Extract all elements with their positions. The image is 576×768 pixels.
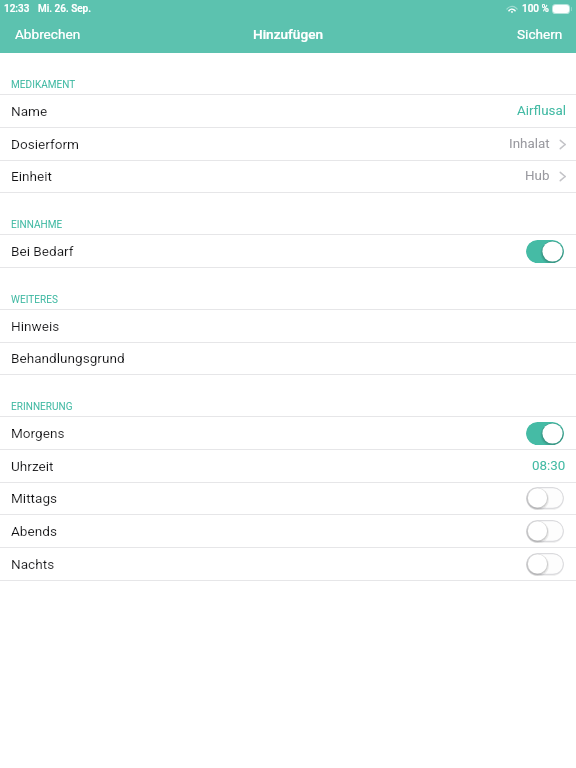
staticText: Nachts [11,556,55,572]
staticText: Mittags [11,490,58,506]
button[interactable]: Bei Bedarf [0,235,576,268]
button[interactable]: Abbrechen [0,18,96,50]
button[interactable]: Bei Bedarf ein [526,240,564,263]
button[interactable]: Nachts aus [526,553,564,576]
staticText: Einheit [11,168,52,184]
staticText: Hinzufügen [253,26,323,42]
staticText: Hinweis [11,318,60,334]
staticText: Uhrzeit [11,458,54,474]
button[interactable]: Behandlungsgrund [0,342,576,375]
staticText: Mi. 26. Sep. [38,3,91,15]
button[interactable]: Sichern [502,18,576,50]
other: Akku [552,4,572,14]
staticText: EINNAHME [11,219,63,231]
staticText: Dosierform [11,136,79,152]
button[interactable]: Morgens ein [526,422,564,445]
other: WLAN [507,5,517,13]
staticText: ERINNERUNG [11,401,73,413]
button[interactable]: Nachts [0,548,576,581]
staticText: 12:33 [4,3,30,15]
staticText: MEDIKAMENT [11,79,76,91]
button[interactable]: Dosierform [0,128,576,161]
staticText: 100 % [522,3,549,15]
button[interactable]: Name [0,95,576,128]
staticText: Airflusal [517,103,566,119]
button[interactable]: Morgens [0,417,576,450]
staticText: Abends [11,523,57,539]
staticText: Morgens [11,425,65,441]
button[interactable]: Einheit [0,160,576,193]
staticText: Behandlungsgrund [11,350,125,366]
staticText: Bei Bedarf [11,243,74,259]
button[interactable]: Uhrzeit [0,450,576,483]
button[interactable]: Mittags aus [526,487,564,510]
staticText: WEITERES [11,294,58,306]
button[interactable]: Abends [0,515,576,548]
button[interactable]: Abends aus [526,520,564,543]
staticText: Name [11,103,48,119]
button[interactable]: Mittags [0,482,576,515]
staticText: Inhalat [509,136,550,152]
button[interactable]: Hinweis [0,310,576,343]
staticText: Hub [525,168,550,184]
staticText: Sichern [517,26,563,42]
staticText: 08:30 [532,458,566,474]
staticText: Abbrechen [15,26,81,42]
